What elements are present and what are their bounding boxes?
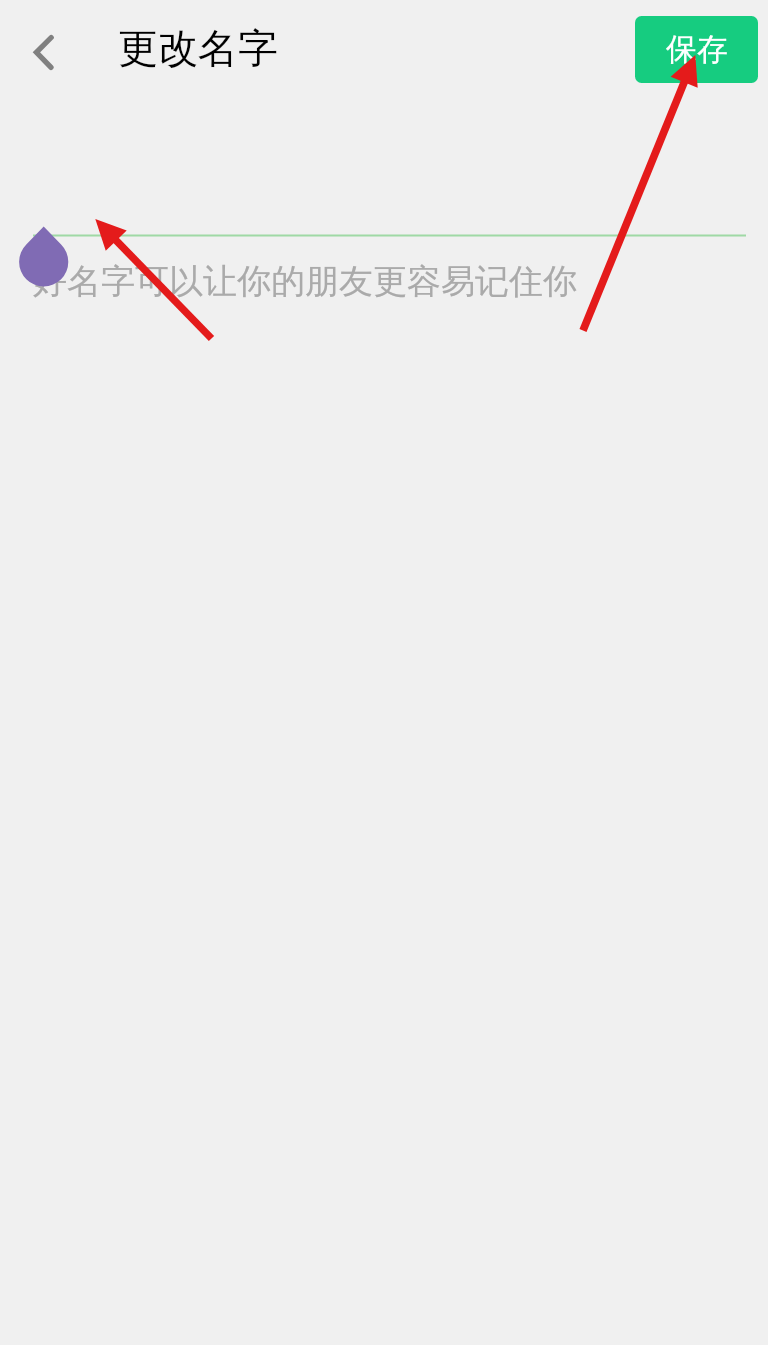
staticText: 更改名字 xyxy=(118,23,278,73)
button[interactable]: Name input field xyxy=(0,190,768,310)
staticText: 好名字可以让你的朋友更容易记住你 xyxy=(33,260,577,303)
staticText: 保存 xyxy=(666,30,728,69)
button[interactable]: 保存 xyxy=(635,16,758,83)
button[interactable]: Back xyxy=(14,19,70,75)
